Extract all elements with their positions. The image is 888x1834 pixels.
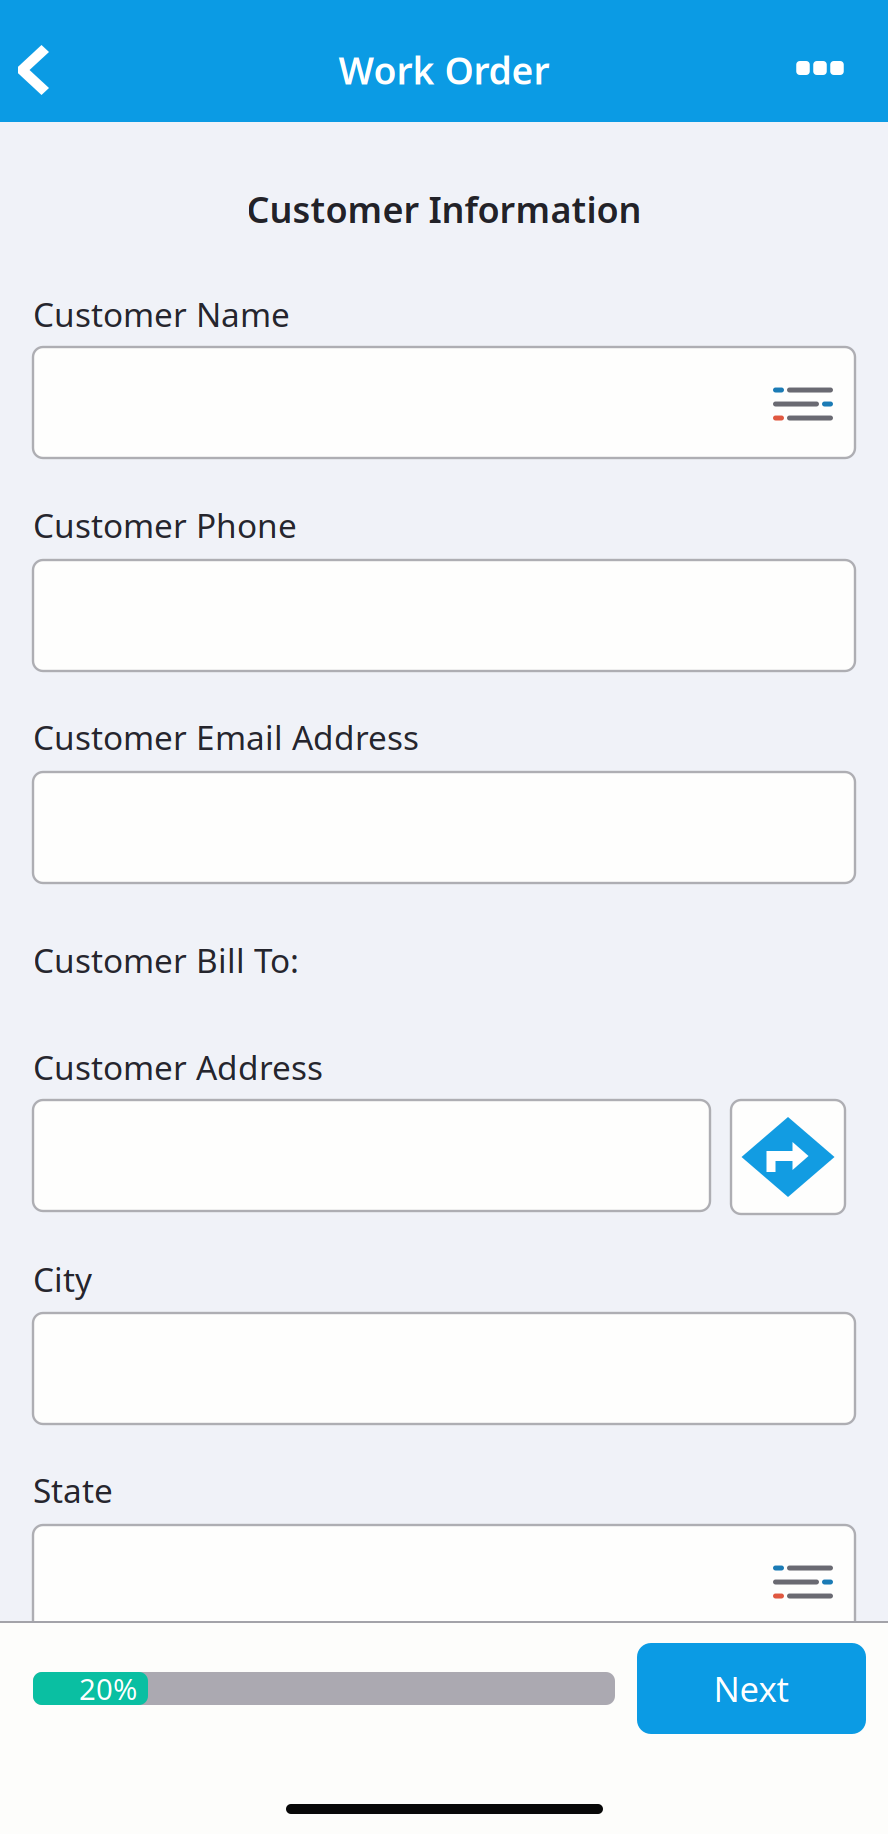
staticText: Customer Email Address <box>33 715 419 759</box>
staticText: 20% <box>79 1669 137 1708</box>
button[interactable]: Customer Address <box>33 1100 710 1211</box>
button[interactable]: Customer Phone <box>33 560 855 671</box>
button[interactable]: Next <box>637 1643 866 1734</box>
staticText: City <box>33 1257 92 1301</box>
button[interactable]: Get directions <box>731 1100 845 1214</box>
staticText: Customer Name <box>33 292 290 336</box>
staticText: Customer Address <box>33 1045 323 1089</box>
staticText: Customer Information <box>246 185 641 233</box>
button[interactable]: More options <box>763 7 877 129</box>
button[interactable]: Customer Name <box>33 347 855 458</box>
staticText: Customer Phone <box>33 503 297 547</box>
staticText: State <box>33 1468 113 1512</box>
button[interactable]: State <box>33 1525 855 1636</box>
staticText: Work Order <box>338 45 549 95</box>
button[interactable]: Back <box>1 9 66 131</box>
button[interactable]: City <box>33 1313 855 1424</box>
staticText: Customer Bill To: <box>33 938 299 982</box>
staticText: Next <box>713 1665 789 1711</box>
button[interactable]: Customer Email Address <box>33 772 855 883</box>
